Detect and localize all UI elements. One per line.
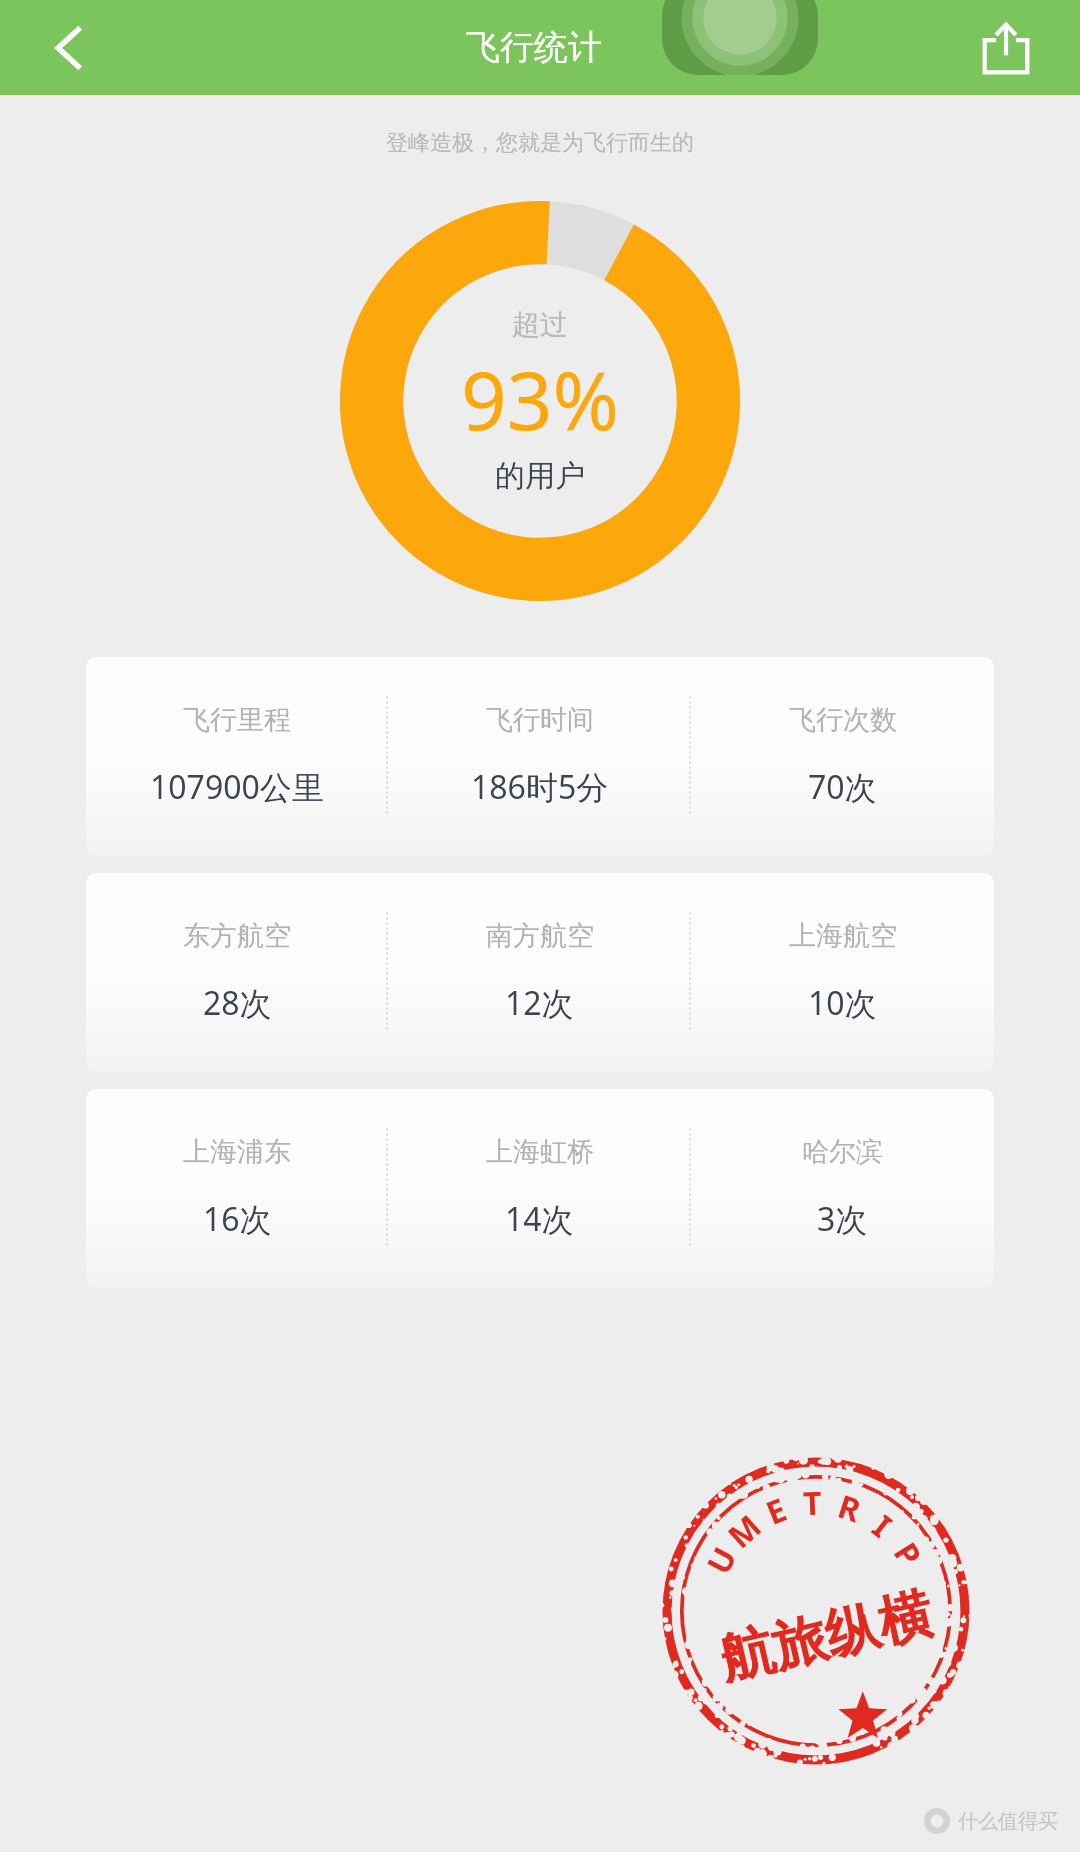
staticText: 飞行时间: [486, 703, 594, 737]
staticText: 70次: [808, 765, 877, 809]
staticText: M: [718, 1504, 771, 1558]
staticText: 上海浦东: [183, 1135, 291, 1169]
staticText: 飞行统计: [466, 26, 602, 69]
staticText: 107900公里: [150, 765, 324, 809]
staticText: E: [759, 1487, 793, 1535]
staticText: 上海虹桥: [486, 1135, 594, 1169]
staticText: 上海航空: [789, 919, 897, 953]
button[interactable]: Share: [974, 16, 1038, 80]
button[interactable]: 上海浦东: [86, 1089, 994, 1287]
staticText: 3次: [817, 1197, 868, 1241]
staticText: 飞行次数: [789, 703, 897, 737]
button[interactable]: 飞行里程: [86, 657, 994, 855]
staticText: 186时5分: [471, 765, 609, 809]
staticText: 什么值得买: [958, 1809, 1058, 1834]
staticText: 12次: [505, 981, 574, 1025]
staticText: 14次: [505, 1197, 574, 1241]
staticText: 南方航空: [486, 919, 594, 953]
staticText: 哈尔滨: [802, 1135, 883, 1169]
staticText: 的用户: [495, 457, 585, 495]
staticText: P: [884, 1534, 932, 1574]
staticText: 超过: [512, 307, 568, 342]
staticText: I: [864, 1505, 901, 1547]
staticText: 飞行里程: [183, 703, 291, 737]
staticText: R: [833, 1484, 866, 1532]
button[interactable]: Back: [42, 19, 100, 77]
staticText: 航旅纵横: [713, 1580, 939, 1694]
staticText: 10次: [808, 981, 877, 1025]
staticText: T: [802, 1481, 823, 1525]
staticText: 16次: [203, 1197, 272, 1241]
staticText: 93%: [461, 344, 619, 453]
staticText: 28次: [203, 981, 272, 1025]
staticText: U: [696, 1539, 747, 1581]
button[interactable]: 东方航空: [86, 873, 994, 1071]
staticText: 登峰造极，您就是为飞行而生的: [0, 129, 1080, 157]
staticText: 东方航空: [183, 919, 291, 953]
